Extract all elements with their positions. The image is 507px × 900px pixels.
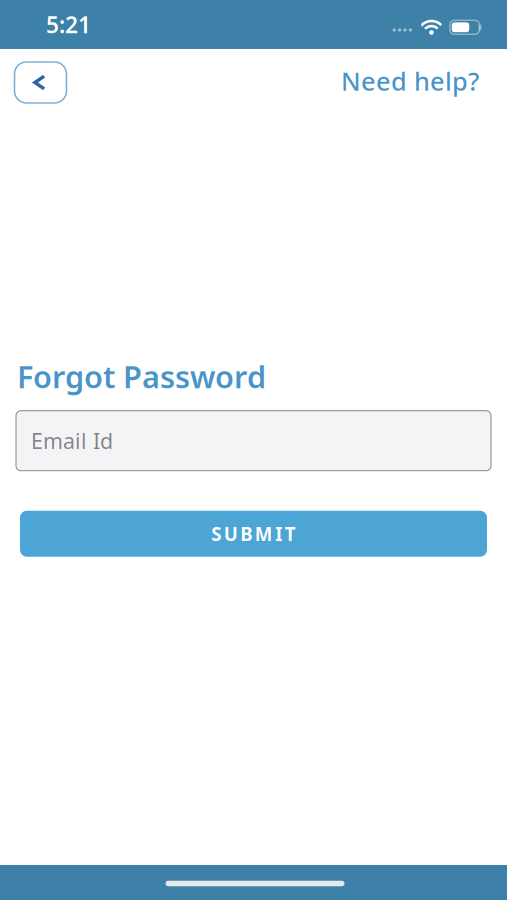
staticText: Need help? <box>341 64 479 98</box>
staticText: 5:21 <box>46 9 91 39</box>
button[interactable]: Back <box>14 62 66 103</box>
button[interactable]: Email Id <box>16 411 491 471</box>
button[interactable]: Need help? <box>341 66 479 99</box>
button[interactable]: SUBMIT <box>20 511 487 557</box>
staticText: Forgot Password <box>17 356 266 397</box>
staticText: SUBMIT <box>211 521 296 546</box>
staticText: Email Id <box>31 427 113 455</box>
